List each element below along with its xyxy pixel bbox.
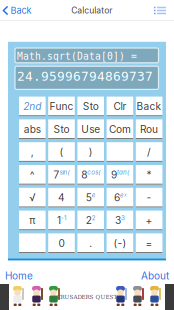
staticText: 8 xyxy=(81,169,87,181)
staticText: -1 xyxy=(61,214,66,222)
button[interactable]: abs xyxy=(19,119,46,139)
staticText: 0 xyxy=(58,237,64,249)
staticText: √ xyxy=(29,191,35,204)
staticText: Sto xyxy=(53,123,69,135)
staticText: 9 xyxy=(111,169,117,181)
button[interactable]: 5 xyxy=(77,188,104,207)
button[interactable]: 0 xyxy=(48,233,75,253)
button[interactable]: 8 xyxy=(77,165,104,185)
staticText: = xyxy=(146,237,153,249)
staticText: Rou xyxy=(140,123,158,135)
button[interactable]: 9 xyxy=(107,165,133,185)
button[interactable]: + xyxy=(136,211,162,230)
button[interactable]: Back xyxy=(0,0,35,21)
staticText: 5 xyxy=(86,191,92,204)
button[interactable]: Back xyxy=(136,97,162,116)
button[interactable]: Sto xyxy=(48,119,75,139)
button[interactable]: Menu xyxy=(148,0,174,21)
staticText: Sto xyxy=(83,100,99,113)
button[interactable]: (-) xyxy=(107,233,133,253)
staticText: About xyxy=(141,270,169,282)
staticText: Back xyxy=(137,100,162,113)
staticText: ^ xyxy=(30,169,35,181)
button[interactable]: Clr xyxy=(107,97,133,116)
button[interactable]: Rou xyxy=(136,119,162,139)
button[interactable] xyxy=(19,233,46,253)
button[interactable]: 3 xyxy=(107,211,133,230)
button[interactable]: - xyxy=(136,188,162,207)
staticText: abs xyxy=(24,123,41,135)
button[interactable]: 2 xyxy=(77,211,104,230)
staticText: Back xyxy=(10,5,31,16)
button[interactable]: 6 xyxy=(107,188,133,207)
button[interactable]: About xyxy=(135,268,174,284)
staticText: e xyxy=(92,191,96,199)
staticText: (-) xyxy=(113,237,126,249)
staticText: CRUSADERS QUEST xyxy=(56,294,117,300)
staticText: Com xyxy=(109,123,131,135)
staticText: 2 xyxy=(86,214,92,227)
button[interactable]: Com xyxy=(107,119,133,139)
button[interactable]: π xyxy=(19,211,46,230)
button[interactable]: * xyxy=(136,165,162,185)
staticText: ( xyxy=(59,146,63,158)
button[interactable]: . xyxy=(77,233,104,253)
staticText: tan( xyxy=(117,169,129,176)
button[interactable]: Advertisement: Crusaders Quest xyxy=(0,284,174,310)
staticText: 4 xyxy=(58,191,65,204)
staticText: * xyxy=(147,169,152,181)
staticText: Clr xyxy=(113,100,126,113)
staticText: , xyxy=(31,146,34,158)
staticText: Home xyxy=(5,270,33,282)
button[interactable] xyxy=(107,142,133,162)
staticText: eᵡ xyxy=(120,191,126,199)
staticText: 1 xyxy=(57,214,61,227)
button[interactable]: 7 xyxy=(48,165,75,185)
staticText: Func xyxy=(49,100,73,113)
button[interactable]: / xyxy=(136,142,162,162)
staticText: - xyxy=(147,191,152,204)
staticText: 3 xyxy=(121,214,125,222)
button[interactable]: = xyxy=(136,233,162,253)
staticText: Calculator xyxy=(71,5,112,16)
staticText: cos( xyxy=(87,169,100,176)
button[interactable]: ^ xyxy=(19,165,46,185)
button[interactable]: Sto xyxy=(77,97,104,116)
button[interactable]: Home xyxy=(0,268,39,284)
staticText: . xyxy=(89,237,92,249)
staticText: 3 xyxy=(115,214,121,227)
staticText: 2nd xyxy=(23,100,41,113)
button[interactable]: , xyxy=(19,142,46,162)
button[interactable]: 1 xyxy=(48,211,75,230)
staticText: Use xyxy=(81,123,100,135)
staticText: ) xyxy=(89,146,93,158)
staticText: π xyxy=(29,214,35,227)
staticText: 2 xyxy=(92,214,96,222)
button[interactable]: 4 xyxy=(48,188,75,207)
staticText: Math.sqrt(Data[0]) = xyxy=(17,51,137,62)
staticText: / xyxy=(147,146,151,158)
staticText: 7 xyxy=(53,169,59,181)
button[interactable]: √ xyxy=(19,188,46,207)
button[interactable]: Use xyxy=(77,119,104,139)
button[interactable]: 2nd xyxy=(19,97,46,116)
staticText: sin( xyxy=(59,169,69,176)
button[interactable]: ( xyxy=(48,142,75,162)
button[interactable]: Func xyxy=(48,97,75,116)
button[interactable]: ) xyxy=(77,142,104,162)
staticText: 24.95996794869737 xyxy=(17,69,153,84)
staticText: + xyxy=(146,214,153,227)
staticText: 6 xyxy=(114,191,120,204)
